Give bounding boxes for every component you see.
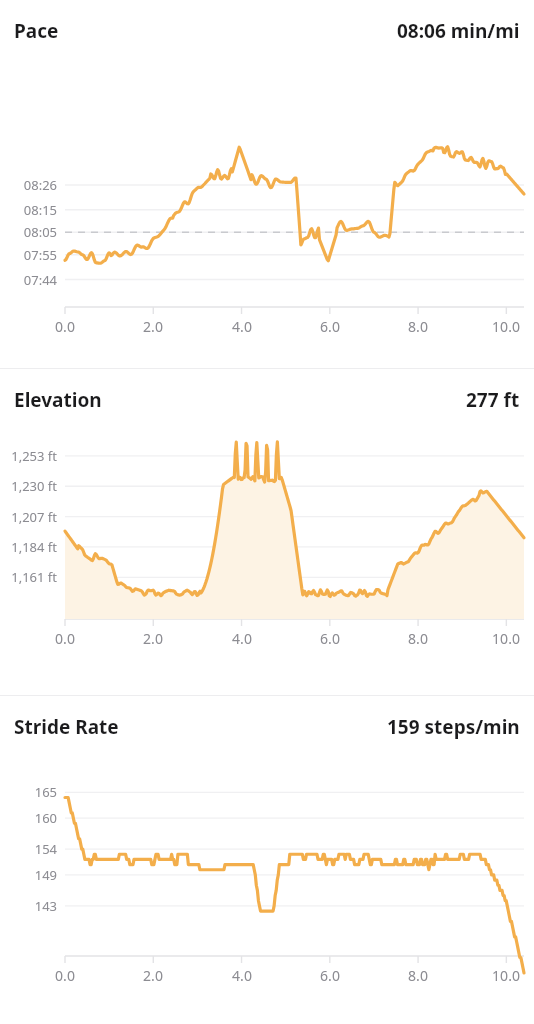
staticText: 4.0 (214, 629, 270, 648)
staticText: 08:15 (0, 201, 57, 219)
staticText: 6.0 (302, 317, 358, 336)
staticText: 0.0 (37, 629, 93, 648)
staticText: 154 (0, 840, 57, 858)
staticText: 1,207 ft (0, 508, 57, 526)
staticText: 08:06 min/mi (397, 18, 520, 44)
staticText: 08:05 (0, 223, 57, 241)
staticText: 8.0 (390, 966, 446, 985)
staticText: 4.0 (214, 317, 270, 336)
staticText: 149 (0, 866, 57, 884)
staticText: 277 ft (466, 387, 520, 413)
staticText: 07:44 (0, 271, 57, 289)
button[interactable]: Pace (0, 0, 534, 368)
staticText: 0.0 (37, 317, 93, 336)
staticText: 1,253 ft (0, 447, 57, 465)
staticText: 6.0 (302, 629, 358, 648)
staticText: Pace (14, 18, 59, 44)
staticText: 143 (0, 897, 57, 915)
staticText: 07:55 (0, 246, 57, 264)
staticText: 0.0 (37, 966, 93, 985)
staticText: 165 (0, 783, 57, 801)
button[interactable]: Stride Rate (0, 696, 534, 1024)
staticText: 08:26 (0, 176, 57, 194)
staticText: 6.0 (302, 966, 358, 985)
staticText: 2.0 (125, 629, 181, 648)
staticText: 1,161 ft (0, 568, 57, 586)
staticText: Stride Rate (14, 714, 119, 740)
staticText: 159 steps/min (387, 714, 520, 740)
staticText: 4.0 (214, 966, 270, 985)
staticText: 1,184 ft (0, 538, 57, 556)
staticText: 8.0 (390, 629, 446, 648)
staticText: 2.0 (125, 317, 181, 336)
staticText: 1,230 ft (0, 477, 57, 495)
staticText: Elevation (14, 387, 102, 413)
staticText: 2.0 (125, 966, 181, 985)
staticText: 8.0 (390, 317, 446, 336)
button[interactable]: Elevation (0, 369, 534, 695)
staticText: 10.0 (478, 629, 534, 648)
staticText: 10.0 (478, 317, 534, 336)
staticText: 160 (0, 809, 57, 827)
staticText: 10.0 (478, 966, 534, 985)
